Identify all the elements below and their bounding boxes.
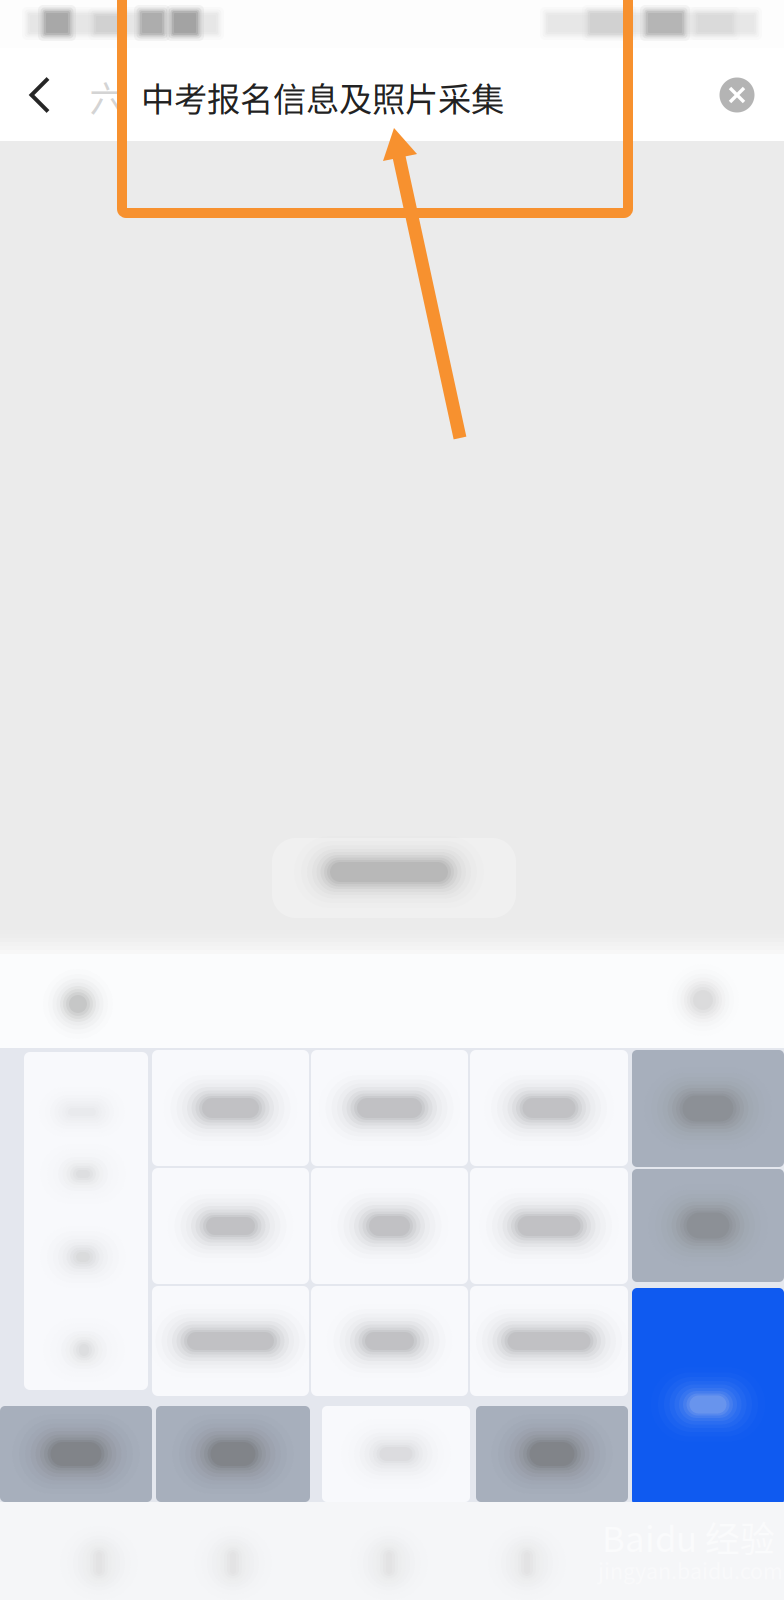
button[interactable]: Keyboard key: [152, 1168, 309, 1284]
button[interactable]: Keyboard key: [632, 1169, 784, 1282]
button[interactable]: Keyboard key: [311, 1168, 468, 1284]
button[interactable]: Keyboard key: [470, 1168, 628, 1284]
button[interactable]: Keyboard key: [632, 1050, 784, 1167]
button[interactable]: Keyboard key: [156, 1406, 310, 1502]
staticText: 中考报名信息及照片采集: [141, 73, 504, 121]
button[interactable]: Keyboard key: [152, 1050, 309, 1166]
button[interactable]: Keyboard key: [322, 1406, 470, 1502]
button[interactable]: Back: [2, 48, 78, 141]
button[interactable]: Keyboard key: [470, 1286, 628, 1396]
button[interactable]: Keyboard key: [311, 1050, 468, 1166]
button[interactable]: Keyboard key: [152, 1286, 309, 1396]
button[interactable]: Keyboard key: [470, 1050, 628, 1166]
button[interactable]: Keyboard key: [0, 1406, 152, 1502]
button[interactable]: Keyboard key: [311, 1286, 468, 1396]
button[interactable]: Close: [708, 66, 766, 124]
button[interactable]: Keyboard key: [476, 1406, 628, 1502]
staticText: 六: [89, 72, 124, 122]
button[interactable]: Keyboard key: [632, 1288, 784, 1505]
button[interactable]: Keyboard key: [24, 1052, 148, 1390]
